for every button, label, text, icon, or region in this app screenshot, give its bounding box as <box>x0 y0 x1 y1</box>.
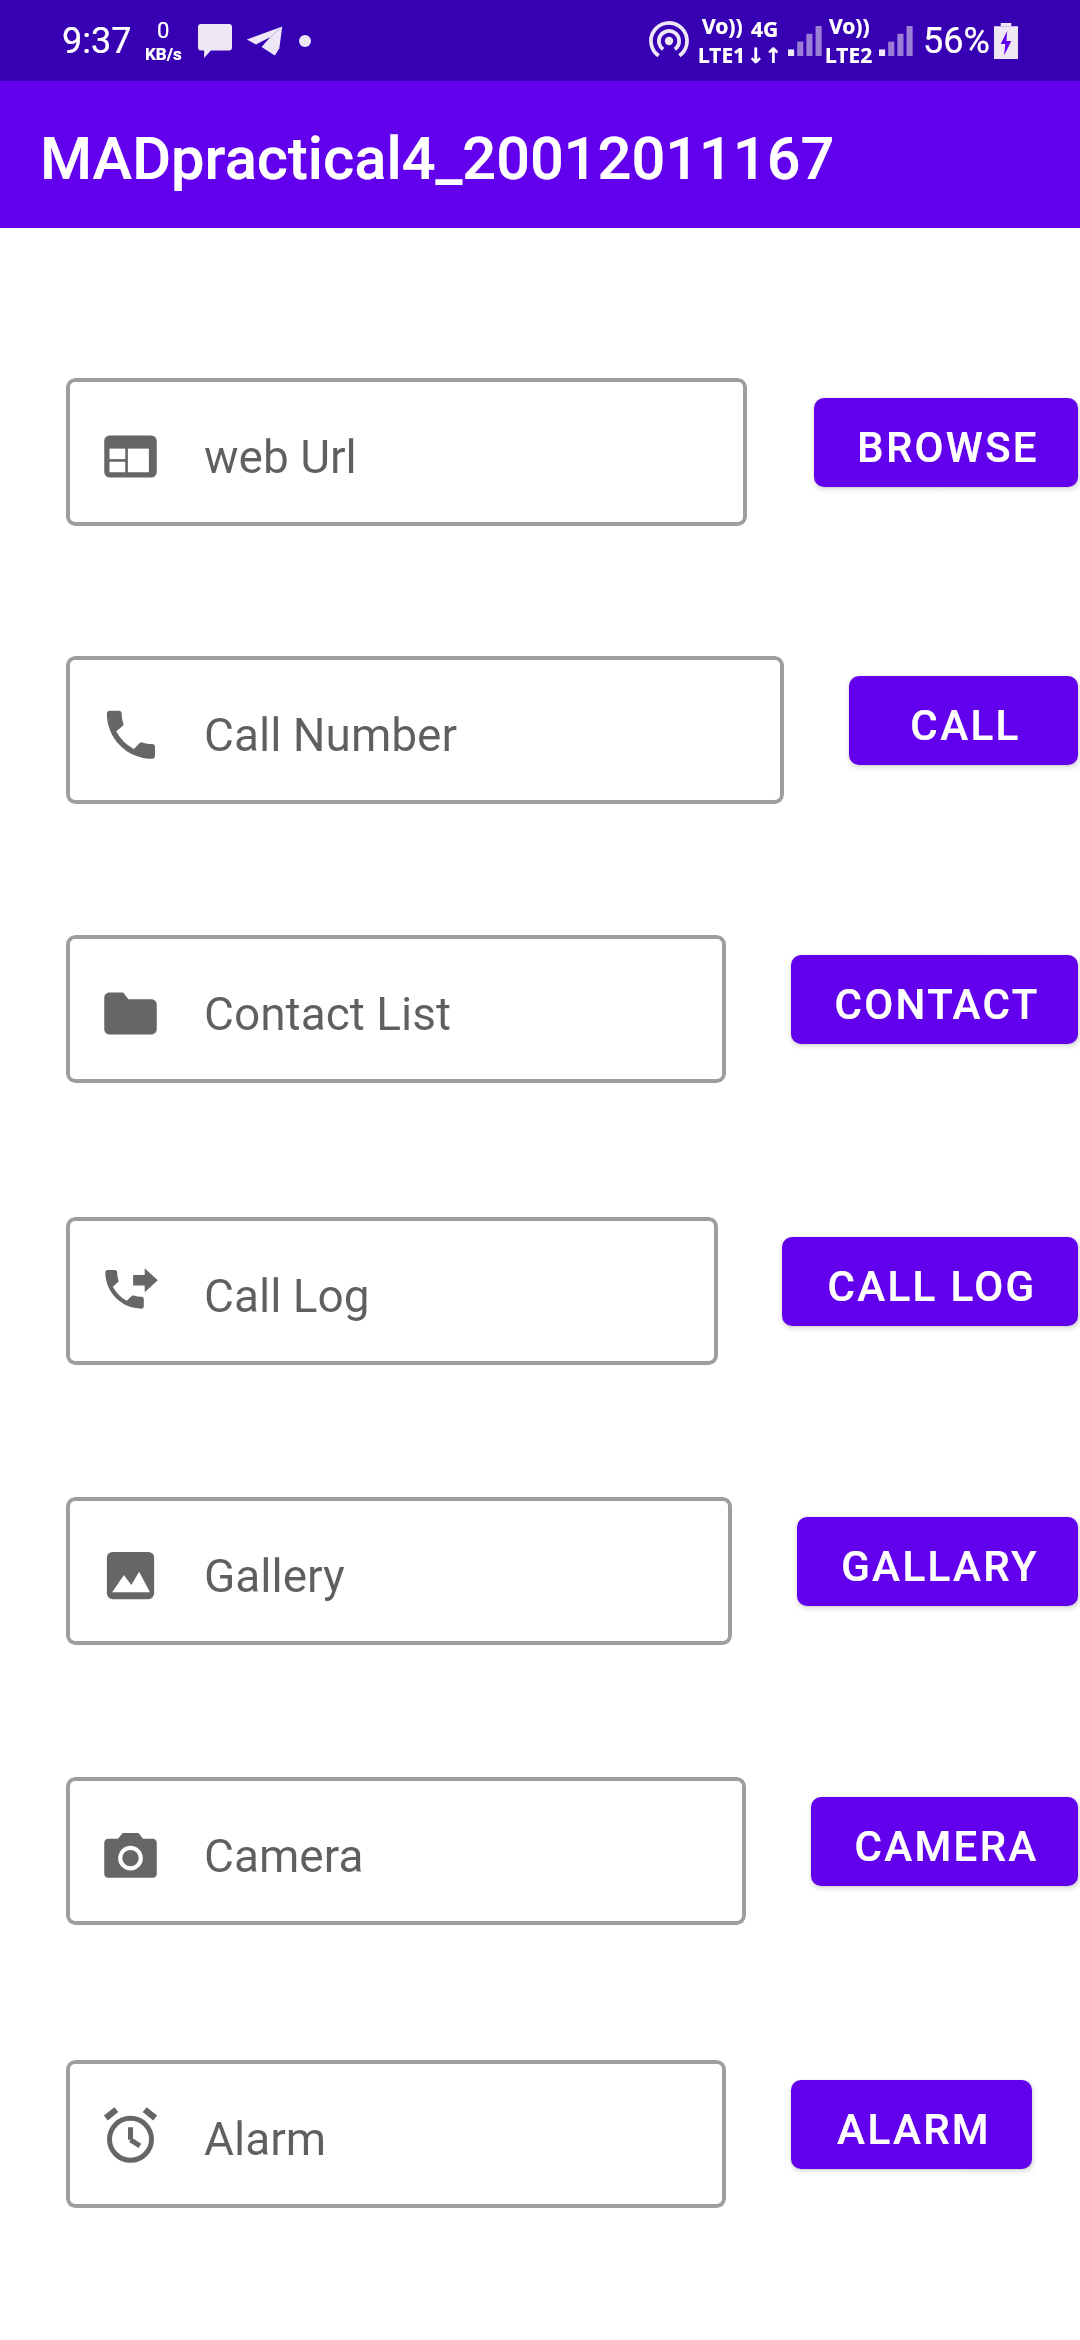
button[interactable]: CONTACT <box>791 955 1078 1044</box>
staticText: Camera <box>204 1829 364 1883</box>
staticText: 56% <box>923 20 990 62</box>
staticText: 0 <box>157 18 170 44</box>
staticText: LTE2 <box>825 41 873 70</box>
staticText: Vo)) <box>702 12 743 41</box>
button[interactable]: CALL <box>849 676 1078 765</box>
staticText: Gallery <box>204 1549 345 1603</box>
staticText: 4G <box>751 15 779 44</box>
button[interactable]: Gallery <box>66 1497 732 1645</box>
staticText: CAMERA <box>854 1822 1039 1871</box>
staticText: Vo)) <box>829 12 870 41</box>
button[interactable]: ALARM <box>791 2080 1032 2169</box>
button[interactable]: GALLARY <box>797 1517 1078 1606</box>
staticText: LTE1 <box>698 41 746 70</box>
button[interactable]: Call Number <box>66 656 784 804</box>
staticText: Alarm <box>204 2112 327 2166</box>
button[interactable]: Alarm <box>66 2060 726 2208</box>
staticText: BROWSE <box>857 423 1039 472</box>
staticText: Call Number <box>204 708 458 762</box>
button[interactable]: BROWSE <box>814 398 1078 487</box>
staticText: GALLARY <box>841 1542 1039 1591</box>
staticText: ↓↑ <box>747 44 783 68</box>
button[interactable]: Contact List <box>66 935 726 1083</box>
staticText: Call Log <box>204 1269 370 1323</box>
button[interactable]: Camera <box>66 1777 746 1925</box>
staticText: KB/s <box>145 44 182 64</box>
button[interactable]: Call Log <box>66 1217 718 1365</box>
staticText: CALL <box>910 701 1021 750</box>
staticText: CONTACT <box>834 980 1040 1029</box>
staticText: web Url <box>204 430 357 484</box>
button[interactable]: CAMERA <box>811 1797 1078 1886</box>
staticText: 9:37 <box>62 20 132 62</box>
staticText: ALARM <box>837 2105 991 2154</box>
staticText: MADpractical4_20012011167 <box>40 124 835 194</box>
staticText: Contact List <box>204 987 451 1041</box>
staticText: CALL LOG <box>827 1262 1037 1311</box>
button[interactable]: web Url <box>66 378 747 526</box>
button[interactable]: CALL LOG <box>782 1237 1078 1326</box>
